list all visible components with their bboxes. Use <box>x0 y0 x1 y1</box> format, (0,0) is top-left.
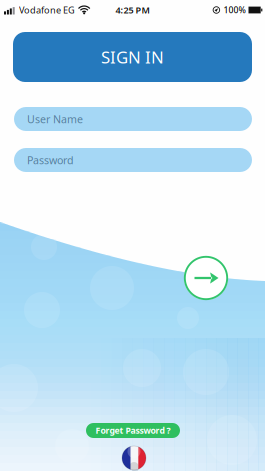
staticText: User Name <box>27 112 83 126</box>
staticText: 4:25 PM <box>115 4 149 16</box>
staticText: Forget Password ? <box>95 425 170 436</box>
staticText: Password <box>27 153 74 167</box>
button[interactable]: SIGN IN <box>13 32 252 82</box>
button[interactable]: User Name <box>13 107 251 131</box>
staticText: 100% <box>223 4 245 16</box>
staticText: SIGN IN <box>101 46 164 68</box>
button[interactable]: Continue <box>184 256 228 300</box>
staticText: Vodafone EG <box>19 4 75 16</box>
button[interactable]: Password <box>13 148 251 172</box>
button[interactable]: Forget Password ? <box>86 423 180 438</box>
